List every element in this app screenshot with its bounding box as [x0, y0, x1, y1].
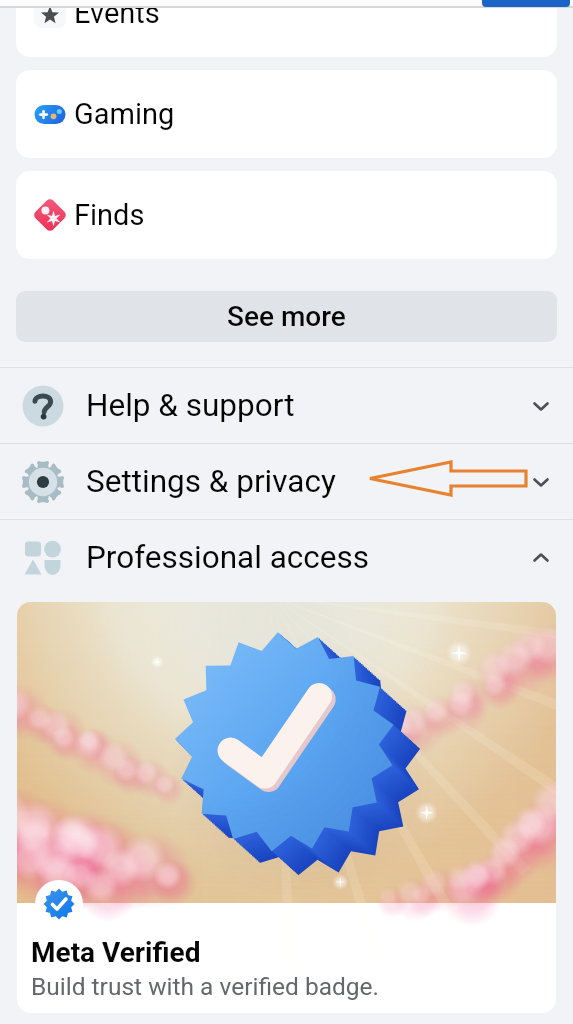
staticText: Gaming [74, 97, 175, 131]
button[interactable]: Professional access [0, 520, 573, 595]
button[interactable]: Gaming [16, 70, 557, 158]
button[interactable]: Events [16, 0, 557, 57]
staticText: Build trust with a verified badge. [31, 972, 380, 1001]
button[interactable]: Finds [16, 171, 557, 259]
staticText: Finds [74, 198, 145, 232]
staticText: Settings & privacy [86, 463, 336, 500]
button[interactable]: Help & support [0, 368, 573, 443]
staticText: Meta Verified [31, 936, 201, 969]
staticText: Help & support [86, 387, 295, 424]
button[interactable]: See more [16, 291, 557, 342]
button[interactable]: Meta Verified [17, 602, 556, 1013]
staticText: See more [227, 300, 346, 333]
staticText: Events [74, 0, 160, 30]
button[interactable]: Settings & privacy [0, 444, 573, 519]
staticText: Professional access [86, 539, 369, 576]
